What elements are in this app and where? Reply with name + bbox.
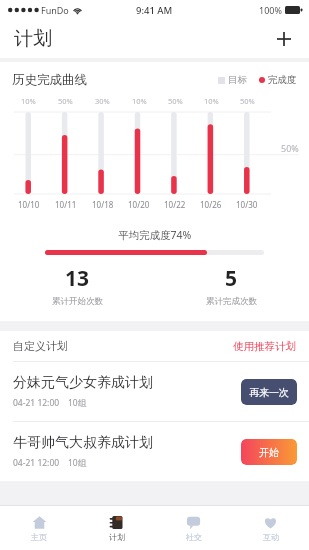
- staticText: 开始: [259, 446, 279, 459]
- staticText: 分妹元气少女养成计划: [13, 374, 153, 392]
- staticText: 10%: [204, 96, 219, 106]
- staticText: 累计开始次数: [52, 296, 103, 307]
- staticText: 50%: [168, 96, 183, 106]
- staticText: 5: [225, 264, 238, 293]
- button[interactable]: 使用推荐计划: [233, 340, 296, 353]
- staticText: 历史完成曲线: [12, 72, 87, 88]
- staticText: 计划: [14, 27, 52, 51]
- button[interactable]: Add plan: [269, 24, 299, 54]
- staticText: 自定义计划: [13, 339, 68, 353]
- staticText: 50%: [281, 142, 299, 154]
- button[interactable]: 互动: [232, 506, 309, 550]
- staticText: 牛哥帅气大叔养成计划: [13, 434, 153, 452]
- staticText: 社交: [186, 532, 202, 542]
- staticText: 累计完成次数: [206, 296, 257, 307]
- staticText: 13: [65, 264, 90, 293]
- button[interactable]: 开始: [241, 439, 297, 465]
- staticText: 10/20: [128, 199, 150, 210]
- staticText: 10%: [132, 96, 147, 106]
- staticText: 10/10: [18, 199, 40, 210]
- button[interactable]: 分妹元气少女养成计划: [0, 362, 309, 421]
- staticText: 50%: [58, 96, 73, 106]
- staticText: 计划: [109, 532, 125, 542]
- staticText: 完成度: [268, 74, 297, 86]
- staticText: 9:41 AM: [136, 4, 173, 17]
- staticText: 10/11: [55, 199, 77, 210]
- button[interactable]: 牛哥帅气大叔养成计划: [0, 422, 309, 481]
- staticText: 04-21 12:00 10组: [13, 457, 87, 469]
- staticText: FunDo: [41, 4, 69, 16]
- button[interactable]: 再来一次: [241, 379, 297, 405]
- button[interactable]: 计划: [78, 506, 155, 550]
- staticText: 100%: [259, 4, 282, 16]
- staticText: 04-21 12:00 10组: [13, 397, 87, 409]
- button[interactable]: 社交: [155, 506, 232, 550]
- button[interactable]: 主页: [0, 506, 78, 550]
- staticText: 10/26: [200, 199, 222, 210]
- staticText: 50%: [240, 96, 255, 106]
- staticText: 10/22: [164, 199, 186, 210]
- staticText: 使用推荐计划: [233, 340, 296, 353]
- staticText: 10/18: [92, 199, 114, 210]
- staticText: 主页: [31, 532, 47, 542]
- staticText: 10/30: [236, 199, 258, 210]
- staticText: 互动: [263, 532, 279, 542]
- staticText: 30%: [95, 96, 110, 106]
- staticText: 平均完成度74%: [118, 228, 192, 242]
- staticText: 目标: [228, 74, 247, 86]
- staticText: 10%: [21, 96, 36, 106]
- staticText: 再来一次: [249, 386, 289, 399]
